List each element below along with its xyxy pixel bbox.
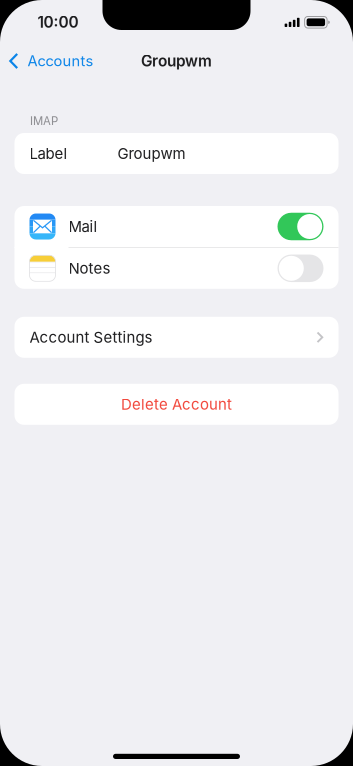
button[interactable]: Account Settings [14,317,338,358]
staticText: Mail [68,217,97,236]
staticText: Notes [68,259,110,277]
staticText: Account Settings [29,328,152,346]
button[interactable]: Notes [14,248,338,289]
button[interactable]: Mail [14,206,338,247]
staticText: Delete Account [121,395,232,413]
button[interactable]: Accounts [0,47,100,75]
staticText: Groupwm [141,52,212,70]
staticText: Accounts [28,52,94,70]
staticText: 10:00 [37,13,78,32]
button[interactable]: Delete Account [14,384,338,425]
staticText: IMAP [30,114,58,128]
staticText: Label [29,144,67,163]
staticText: Groupwm [117,144,185,163]
